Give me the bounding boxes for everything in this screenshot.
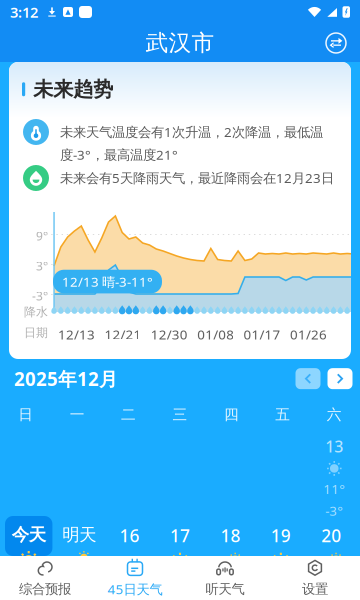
staticText: 二 xyxy=(121,406,136,424)
staticText: 9° xyxy=(36,228,48,244)
staticText: 18 xyxy=(220,524,240,547)
staticText: 3:12 xyxy=(10,2,38,22)
staticText: 六 xyxy=(327,406,342,424)
staticText: 三 xyxy=(172,406,187,424)
button[interactable]: 16 xyxy=(106,516,153,556)
staticText: 明天 xyxy=(62,524,96,545)
staticText: 五 xyxy=(275,406,290,424)
staticText: -3° xyxy=(32,288,48,304)
staticText: 今天 xyxy=(12,524,46,545)
staticText: 01/26 xyxy=(290,325,327,343)
staticText: 12/30 xyxy=(151,325,188,343)
button[interactable]: 18 xyxy=(207,516,254,556)
button[interactable]: 听天气 xyxy=(180,556,270,600)
staticText: 四 xyxy=(224,406,239,424)
button[interactable]: 17 xyxy=(156,516,204,556)
staticText: 12/21 xyxy=(104,325,141,343)
staticText: 未来趋势 xyxy=(33,77,113,102)
staticText: 武汉市 xyxy=(145,29,214,57)
staticText: 综合预报 xyxy=(19,581,71,597)
staticText: 一 xyxy=(70,406,85,424)
button[interactable]: Switch city xyxy=(318,26,354,60)
button[interactable]: Next month xyxy=(324,364,356,394)
staticText: 日 xyxy=(18,406,33,424)
staticText: 3° xyxy=(36,258,48,274)
staticText: 日期 xyxy=(24,325,48,340)
staticText: 12/13 晴-3-11° xyxy=(62,273,153,290)
staticText: 19 xyxy=(271,524,291,547)
staticText: 16 xyxy=(120,524,140,547)
staticText: 2025年12月 xyxy=(14,366,118,391)
staticText: 01/17 xyxy=(244,325,281,343)
staticText: 45日天气 xyxy=(107,580,162,598)
button[interactable]: Previous month xyxy=(292,364,324,394)
staticText: 设置 xyxy=(302,581,328,597)
staticText: 听天气 xyxy=(205,581,244,597)
staticText: 13 xyxy=(325,436,343,457)
button[interactable]: 20 xyxy=(308,516,355,556)
button[interactable]: 今天 xyxy=(5,516,52,556)
staticText: 11° xyxy=(323,480,345,498)
button[interactable]: 综合预报 xyxy=(0,556,90,600)
staticText: 未来会有5天降雨天气，最近降雨会在12月23日 xyxy=(60,169,334,187)
staticText: 20 xyxy=(321,524,341,547)
button[interactable]: 19 xyxy=(257,516,304,556)
button[interactable]: 明天 xyxy=(55,516,103,556)
staticText: 未来天气温度会有1次升温，2次降温，最低温度-3°，最高温度21° xyxy=(60,123,323,163)
staticText: 12/13 xyxy=(58,325,95,343)
button[interactable]: 设置 xyxy=(270,556,360,600)
staticText: 17 xyxy=(170,524,190,547)
staticText: -3° xyxy=(325,502,343,519)
staticText: 01/08 xyxy=(197,325,234,343)
button[interactable]: 45日天气 xyxy=(90,556,180,600)
staticText: 降水 xyxy=(24,305,48,319)
